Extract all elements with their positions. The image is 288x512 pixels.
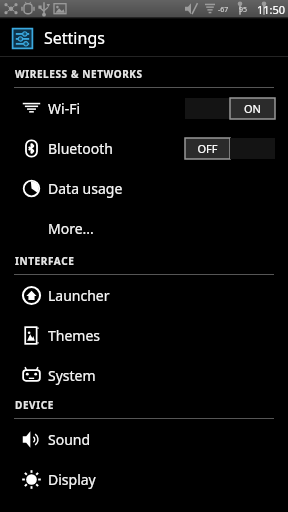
button[interactable]: More... — [0, 208, 288, 248]
button[interactable]: Wi-Fi — [0, 88, 288, 128]
staticText: 95 — [239, 5, 248, 15]
staticText: Wi-Fi — [48, 99, 81, 118]
staticText: Display — [48, 470, 96, 489]
button[interactable]: Switch off — [185, 138, 275, 159]
button[interactable]: Launcher — [0, 275, 288, 315]
button[interactable]: System — [0, 355, 288, 395]
staticText: OFF — [197, 141, 218, 156]
button[interactable]: Bluetooth — [0, 128, 288, 168]
button[interactable]: Sound — [0, 419, 288, 459]
staticText: -67 — [218, 5, 229, 15]
button[interactable]: Switch on — [185, 98, 275, 119]
staticText: WIRELESS & NETWORKS — [15, 67, 143, 81]
staticText: Sound — [48, 430, 91, 449]
button[interactable]: Themes — [0, 315, 288, 355]
staticText: Bluetooth — [48, 139, 113, 158]
staticText: Themes — [48, 326, 101, 345]
button[interactable]: Display — [0, 459, 288, 499]
staticText: INTERFACE — [15, 254, 75, 268]
staticText: ON — [244, 101, 261, 116]
staticText: More... — [48, 219, 94, 238]
button[interactable]: Data usage — [0, 168, 288, 208]
staticText: Settings — [44, 27, 105, 49]
staticText: DEVICE — [15, 398, 54, 412]
staticText: Data usage — [48, 179, 123, 198]
staticText: Launcher — [48, 286, 110, 305]
staticText: System — [48, 366, 96, 385]
staticText: 11:50 — [257, 2, 286, 17]
